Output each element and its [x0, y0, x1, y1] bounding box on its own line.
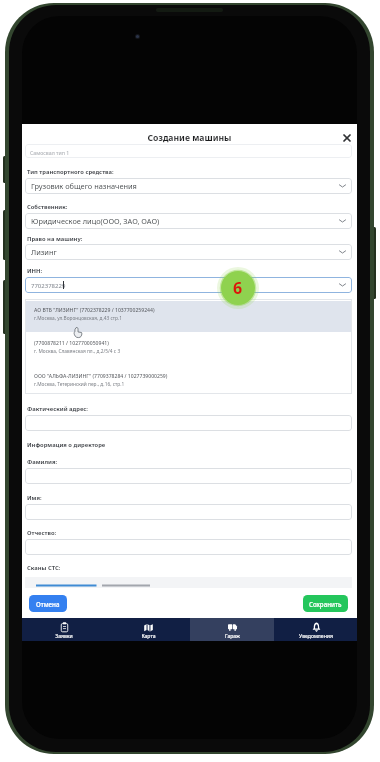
staticText: Тип транспортного средства: [27, 168, 114, 176]
staticText: ИНН: [27, 267, 43, 275]
button[interactable]: Лизинг [25, 244, 352, 260]
staticText: Информация о директоре [27, 441, 106, 449]
button[interactable]: Сохранить [303, 595, 348, 612]
staticText: 7702378229 [31, 282, 66, 290]
staticText: ООО "АЛЬФА-ЛИЗИНГ" (7709378284 / 1027739… [34, 373, 168, 380]
staticText: АО ВТБ "ЛИЗИНГ" (7702378229 / 1037700259… [34, 307, 155, 314]
staticText: Лизинг [31, 247, 57, 257]
button[interactable]: Гараж [190, 618, 274, 641]
button[interactable]: Уведомления [274, 618, 357, 641]
staticText: Создание машины [22, 132, 357, 144]
staticText: Сканы СТС: [27, 564, 61, 572]
button[interactable] [25, 504, 352, 520]
button[interactable]: Отмена [29, 595, 67, 612]
staticText: Отчество: [27, 529, 57, 537]
staticText: Собственник: [27, 203, 68, 211]
button[interactable] [25, 301, 352, 332]
staticText: Право на машину: [27, 235, 83, 243]
staticText: Уведомления [299, 633, 333, 640]
staticText: Сохранить [309, 600, 342, 608]
staticText: г. Москва, Славянская пл., д.2/5/4 с 3 [34, 348, 121, 355]
staticText: Имя: [27, 494, 42, 502]
button[interactable]: Закрыть [338, 129, 355, 146]
staticText: Заявки [55, 633, 73, 640]
staticText: Фактический адрес: [27, 405, 88, 413]
staticText: г.Москва, Тетеринский пер., д.16, стр.1 [34, 381, 125, 388]
staticText: Карта [141, 633, 156, 640]
staticText: Фамилия: [27, 458, 58, 466]
button[interactable]: Юридическое лицо(ООО, ЗАО, ОАО) [25, 213, 352, 229]
button[interactable]: Заявки [22, 618, 106, 641]
button[interactable] [25, 415, 352, 431]
staticText: Отмена [36, 600, 60, 608]
button[interactable] [25, 539, 352, 555]
staticText: 6 [233, 277, 243, 299]
button[interactable]: Карта [106, 618, 190, 641]
staticText: Грузовик общего назначения [31, 181, 137, 191]
staticText: (7700878211 / 1027700050941) [34, 340, 109, 347]
staticText: Юридическое лицо(ООО, ЗАО, ОАО) [31, 216, 160, 226]
staticText: г.Москва, ул.Воронцовская, д.43 стр.1 [34, 315, 123, 322]
button[interactable] [25, 468, 352, 484]
staticText: Самосвал тип 1 [30, 149, 70, 156]
staticText: Гараж [225, 633, 240, 640]
button[interactable] [25, 277, 352, 293]
button[interactable]: Грузовик общего назначения [25, 178, 352, 194]
button[interactable] [25, 577, 352, 588]
